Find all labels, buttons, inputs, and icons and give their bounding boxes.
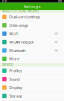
staticText: WIRELESS & NETWORKS xyxy=(2,9,39,13)
staticText: Data usage xyxy=(9,23,28,28)
button[interactable]: Data usage xyxy=(0,21,64,30)
staticText: Settings xyxy=(23,3,40,9)
button[interactable]: WLAN hotspot xyxy=(0,38,64,46)
button[interactable]: Profiles xyxy=(0,67,64,75)
staticText: Sound xyxy=(9,76,19,82)
button[interactable]: More xyxy=(0,55,64,63)
staticText: WLAN hotspot xyxy=(9,39,33,45)
staticText: Profiles xyxy=(9,68,22,73)
button[interactable]: Bluetooth xyxy=(0,46,64,55)
button[interactable]: Wi-Fi xyxy=(0,30,64,38)
staticText: Dual-card settings xyxy=(9,14,40,19)
button[interactable]: Dual-card settings xyxy=(0,13,64,21)
staticText: Bluetooth xyxy=(9,48,25,53)
button[interactable]: Display xyxy=(0,83,64,92)
button[interactable]: Sound xyxy=(0,75,64,83)
staticText: More xyxy=(9,56,19,61)
button[interactable]: Storage xyxy=(0,92,64,100)
staticText: Display xyxy=(9,85,22,90)
staticText: Storage xyxy=(9,93,22,99)
staticText: DEVICE xyxy=(2,63,13,67)
staticText: 10:30 xyxy=(2,0,7,3)
staticText: Wi-Fi xyxy=(9,31,18,36)
staticText: 100% xyxy=(57,0,62,3)
